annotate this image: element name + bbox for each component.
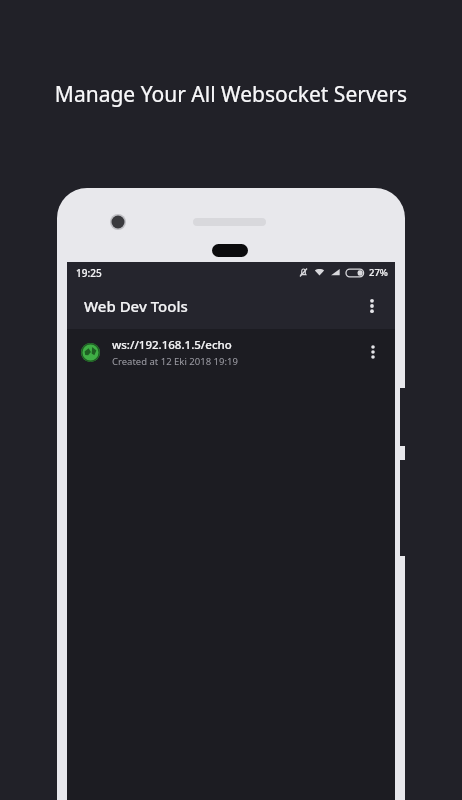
staticText: Web Dev Tools [84, 296, 188, 316]
staticText: 27% [369, 266, 388, 279]
staticText: ws://192.168.1.5/echo [112, 337, 232, 353]
staticText: 19:25 [76, 266, 102, 280]
button[interactable]: Server options [355, 334, 391, 370]
staticText: Created at 12 Eki 2018 19:19 [112, 355, 238, 368]
button[interactable]: More options [353, 287, 391, 325]
button[interactable]: ws://192.168.1.5/echo [67, 329, 395, 375]
staticText: Manage Your All Websocket Servers [16, 80, 446, 109]
